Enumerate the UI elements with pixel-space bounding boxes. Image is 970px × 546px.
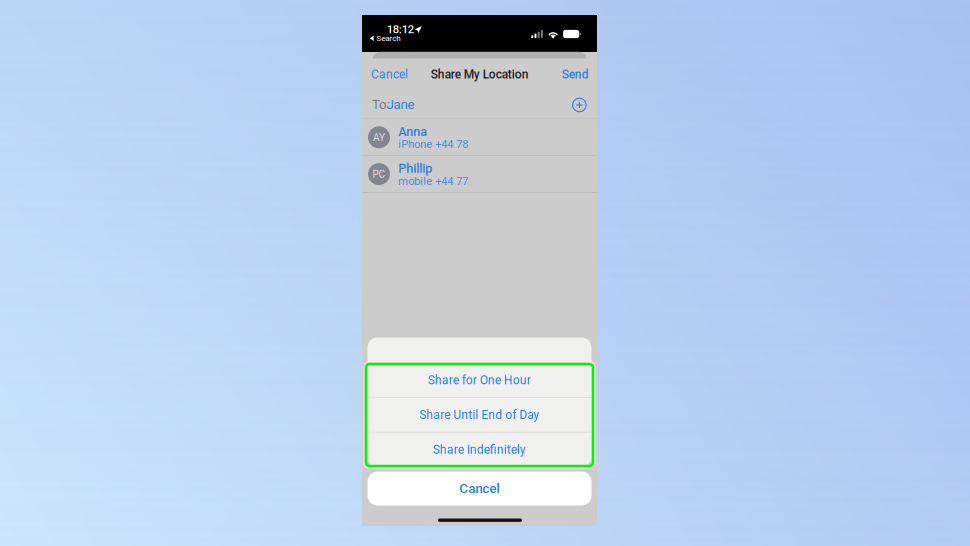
button[interactable]: AY bbox=[362, 119, 597, 156]
button[interactable]: Cancel bbox=[367, 65, 411, 84]
staticText: PC bbox=[372, 168, 385, 180]
staticText: mobile +44 77 bbox=[398, 175, 468, 188]
staticText: Search bbox=[376, 34, 400, 43]
staticText: AY bbox=[373, 132, 385, 143]
button[interactable]: Share for One Hour bbox=[367, 363, 591, 397]
button[interactable]: Share Until End of Day bbox=[367, 398, 591, 432]
button[interactable]: Add contact bbox=[570, 96, 588, 114]
staticText: Jane bbox=[387, 97, 415, 112]
staticText: Phillip bbox=[398, 161, 432, 176]
button[interactable]: Cancel bbox=[367, 471, 591, 505]
staticText: Cancel bbox=[371, 67, 408, 82]
staticText: Share for One Hour bbox=[428, 373, 531, 387]
button[interactable]: PC bbox=[362, 156, 597, 193]
staticText: Anna bbox=[398, 124, 427, 139]
staticText: Send bbox=[562, 67, 589, 82]
staticText: Share Indefinitely bbox=[433, 443, 526, 457]
staticText: To: bbox=[372, 97, 390, 112]
staticText: Cancel bbox=[459, 481, 499, 496]
staticText: Share Until End of Day bbox=[419, 408, 539, 422]
staticText: Share My Location bbox=[431, 67, 529, 82]
button[interactable]: Share Indefinitely bbox=[367, 432, 591, 467]
staticText: 18:12 bbox=[387, 23, 414, 36]
staticText: iPhone +44 78 bbox=[398, 138, 468, 151]
button[interactable]: Send bbox=[552, 65, 593, 84]
